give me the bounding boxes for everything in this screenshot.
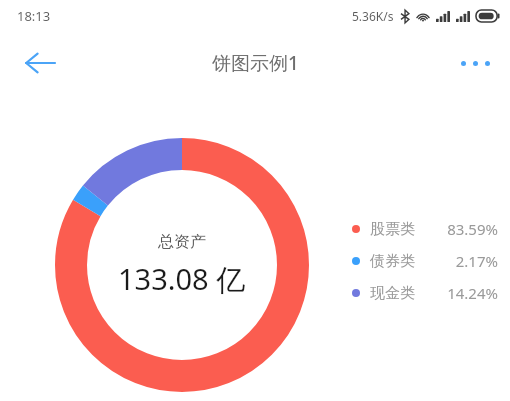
staticText: 18:13 <box>17 7 51 25</box>
button[interactable]: 股票类 <box>352 213 498 245</box>
staticText: 现金类 <box>370 284 415 303</box>
button[interactable]: More options <box>450 40 500 86</box>
button[interactable]: 债券类 <box>352 245 498 277</box>
staticText: 5.36K/s <box>352 8 394 24</box>
staticText: 2.17% <box>455 251 498 271</box>
button[interactable]: 现金类 <box>352 277 498 309</box>
staticText: 133.08 亿 <box>118 259 246 299</box>
staticText: 股票类 <box>370 220 415 239</box>
staticText: 83.59% <box>447 219 498 239</box>
staticText: 债券类 <box>370 252 415 271</box>
staticText: 饼图示例1 <box>212 50 299 76</box>
staticText: 总资产 <box>158 232 206 252</box>
staticText: 14.24% <box>447 283 498 303</box>
button[interactable]: Back <box>14 37 66 89</box>
